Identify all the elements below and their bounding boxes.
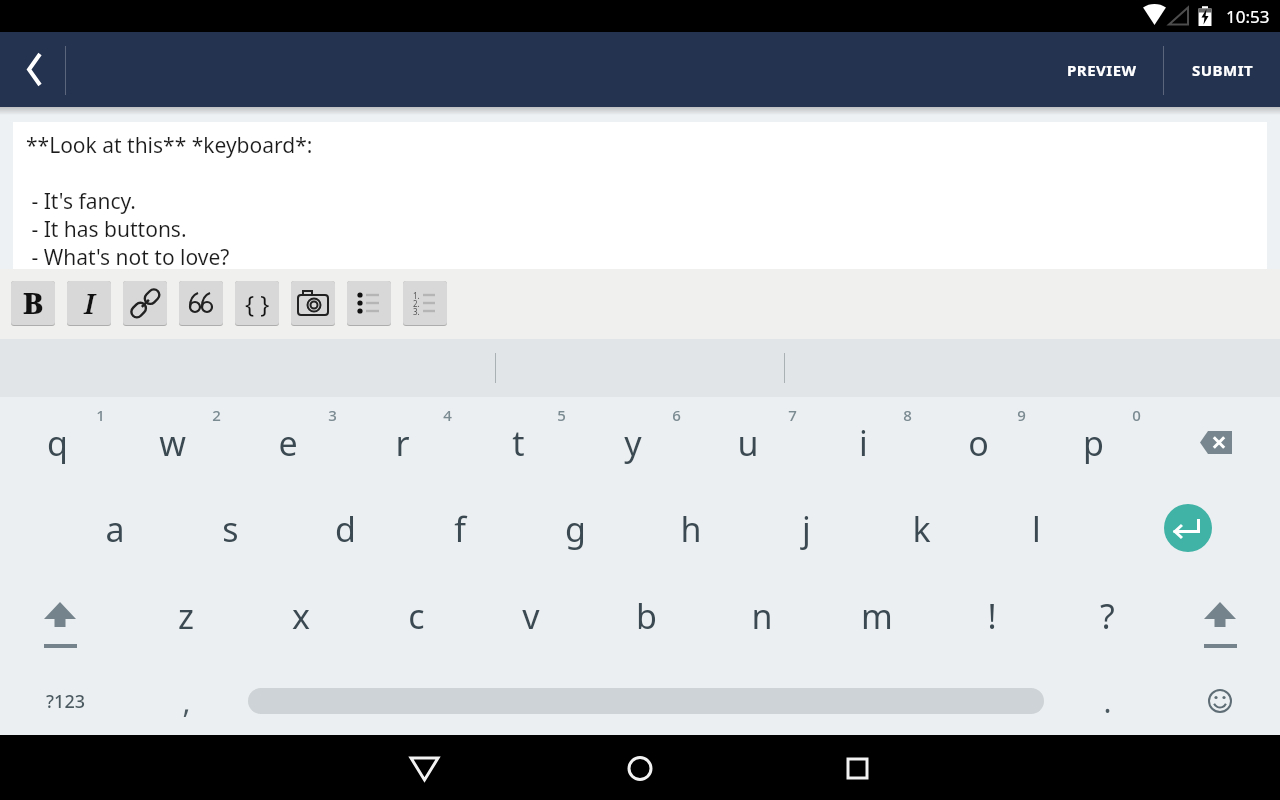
button[interactable]: [600, 735, 680, 800]
button[interactable]: PREVIEW: [1043, 32, 1161, 107]
staticText: s: [222, 506, 239, 552]
button[interactable]: y: [593, 411, 673, 475]
button[interactable]: [67, 281, 111, 326]
staticText: b: [636, 593, 657, 639]
staticText: 5: [557, 405, 566, 425]
staticText: i: [859, 420, 868, 466]
button[interactable]: { }: [235, 281, 279, 325]
staticText: e: [278, 420, 298, 466]
button[interactable]: [291, 281, 335, 325]
button[interactable]: 1.: [403, 281, 447, 325]
button[interactable]: a: [75, 497, 155, 561]
staticText: 4: [443, 405, 452, 425]
staticText: 3.: [413, 306, 420, 316]
staticText: z: [178, 593, 194, 639]
staticText: { }: [245, 287, 270, 320]
staticText: 1.: [413, 290, 420, 300]
staticText: ?: [1100, 593, 1115, 639]
button[interactable]: r: [362, 411, 442, 475]
staticText: w: [159, 420, 186, 466]
staticText: q: [47, 420, 68, 466]
button[interactable]: [123, 281, 167, 325]
staticText: y: [624, 420, 642, 466]
button[interactable]: v: [491, 584, 571, 648]
button[interactable]: B: [11, 281, 55, 325]
staticText: SUBMIT: [1192, 60, 1254, 80]
staticText: 0: [1132, 405, 1141, 425]
button[interactable]: I: [67, 281, 111, 325]
button[interactable]: i: [823, 411, 903, 475]
button[interactable]: u: [708, 411, 788, 475]
staticText: f: [454, 506, 466, 552]
staticText: l: [1032, 506, 1041, 552]
button[interactable]: n: [722, 584, 802, 648]
button[interactable]: c: [376, 584, 456, 648]
staticText: 10:53: [1226, 5, 1270, 28]
button[interactable]: t: [478, 411, 558, 475]
button[interactable]: [13, 122, 1267, 269]
button[interactable]: [291, 281, 335, 326]
button[interactable]: s: [190, 497, 270, 561]
staticText: v: [522, 593, 540, 639]
button[interactable]: z: [146, 584, 226, 648]
button[interactable]: [11, 281, 55, 326]
button[interactable]: .: [1077, 671, 1137, 731]
button[interactable]: [179, 281, 223, 325]
staticText: .: [1103, 681, 1112, 722]
button[interactable]: x: [261, 584, 341, 648]
button[interactable]: SUBMIT: [1166, 32, 1280, 107]
button[interactable]: k: [881, 497, 961, 561]
button[interactable]: ,: [156, 671, 216, 731]
staticText: 1: [96, 405, 105, 425]
button[interactable]: !: [952, 584, 1032, 648]
button[interactable]: l: [996, 497, 1076, 561]
staticText: p: [1083, 420, 1104, 466]
button[interactable]: [1190, 671, 1250, 731]
button[interactable]: [403, 281, 447, 326]
staticText: j: [802, 506, 811, 552]
button[interactable]: p: [1053, 411, 1133, 475]
button[interactable]: j: [766, 497, 846, 561]
button[interactable]: b: [606, 584, 686, 648]
button[interactable]: h: [651, 497, 731, 561]
button[interactable]: f: [420, 497, 500, 561]
staticText: c: [408, 593, 425, 639]
staticText: n: [751, 593, 773, 639]
button[interactable]: [1164, 504, 1212, 552]
button[interactable]: [123, 281, 167, 326]
staticText: t: [512, 420, 525, 466]
staticText: B: [23, 284, 44, 322]
staticText: 7: [788, 405, 797, 425]
staticText: r: [395, 420, 410, 466]
staticText: 6: [672, 405, 681, 425]
button[interactable]: m: [837, 584, 917, 648]
staticText: 2: [212, 405, 221, 425]
button[interactable]: [1188, 584, 1252, 648]
button[interactable]: ?: [1067, 584, 1147, 648]
button[interactable]: [179, 281, 223, 326]
button[interactable]: ?123: [20, 671, 110, 731]
staticText: x: [292, 593, 310, 639]
button[interactable]: [347, 281, 391, 326]
button[interactable]: [347, 281, 391, 325]
button[interactable]: g: [535, 497, 615, 561]
button[interactable]: d: [305, 497, 385, 561]
button[interactable]: e: [248, 411, 328, 475]
button[interactable]: [817, 735, 897, 800]
staticText: 8: [903, 405, 912, 425]
button[interactable]: [28, 584, 92, 648]
button[interactable]: o: [938, 411, 1018, 475]
staticText: m: [861, 593, 893, 639]
button[interactable]: w: [132, 411, 212, 475]
button[interactable]: [0, 32, 66, 107]
staticText: 2.: [413, 298, 420, 308]
staticText: ?123: [46, 689, 85, 714]
staticText: h: [680, 506, 702, 552]
button[interactable]: [1186, 415, 1250, 471]
button[interactable]: [235, 281, 279, 326]
button[interactable]: q: [17, 411, 97, 475]
staticText: **Look at this** *keyboard*: - It's fanc…: [26, 131, 313, 271]
staticText: I: [84, 284, 95, 322]
button[interactable]: [384, 735, 464, 800]
